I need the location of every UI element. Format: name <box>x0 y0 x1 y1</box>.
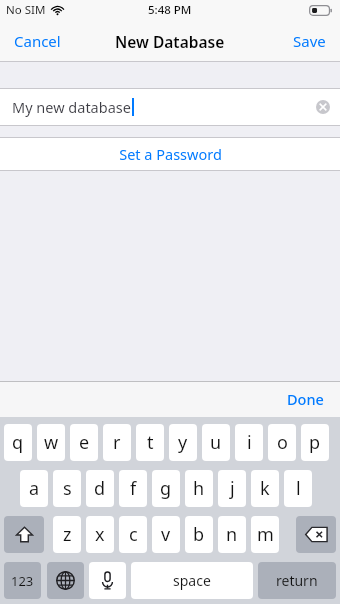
button[interactable]: m <box>251 516 279 553</box>
button[interactable]: i <box>235 424 263 461</box>
button[interactable]: p <box>301 424 329 461</box>
button[interactable]: My new database <box>0 88 340 126</box>
button[interactable]: k <box>251 470 279 507</box>
button[interactable]: z <box>53 516 81 553</box>
staticText: c <box>129 522 138 547</box>
staticText: f <box>130 476 137 501</box>
button[interactable]: e <box>70 424 98 461</box>
button[interactable]: space <box>131 562 253 599</box>
button[interactable]: f <box>119 470 147 507</box>
staticText: x <box>95 522 105 547</box>
button[interactable]: c <box>119 516 147 553</box>
staticText: y <box>178 430 188 455</box>
staticText: a <box>29 476 40 501</box>
button[interactable]: Clear text <box>316 100 330 114</box>
button[interactable]: Dictate <box>89 562 126 599</box>
staticText: k <box>260 476 270 501</box>
staticText: e <box>79 430 90 455</box>
button[interactable]: t <box>136 424 164 461</box>
button[interactable]: 123 <box>4 562 41 599</box>
staticText: m <box>257 522 274 547</box>
staticText: i <box>247 430 252 455</box>
button[interactable]: x <box>86 516 114 553</box>
staticText: h <box>193 476 205 501</box>
staticText: o <box>277 430 288 455</box>
staticText: t <box>147 430 154 455</box>
staticText: s <box>63 476 72 501</box>
button[interactable]: h <box>185 470 213 507</box>
staticText: n <box>226 522 238 547</box>
button[interactable]: o <box>268 424 296 461</box>
staticText: r <box>113 430 121 455</box>
button[interactable]: n <box>218 516 246 553</box>
staticText: No SIM <box>6 2 46 18</box>
button[interactable]: Backspace <box>296 516 336 553</box>
button[interactable]: Save <box>279 23 340 59</box>
staticText: v <box>161 522 171 547</box>
button[interactable]: return <box>258 562 336 599</box>
button[interactable]: q <box>4 424 32 461</box>
staticText: 5:48 PM <box>148 2 192 18</box>
button[interactable]: Set a Password <box>0 137 340 171</box>
staticText: return <box>276 571 318 590</box>
button[interactable]: l <box>284 470 312 507</box>
staticText: Done <box>287 389 324 409</box>
button[interactable]: a <box>20 470 48 507</box>
button[interactable]: Shift <box>4 516 44 553</box>
staticText: u <box>210 430 222 455</box>
button[interactable]: Change keyboard language <box>47 562 84 599</box>
button[interactable]: v <box>152 516 180 553</box>
staticText: Save <box>293 31 326 51</box>
button[interactable]: g <box>152 470 180 507</box>
button[interactable]: Done <box>271 383 340 415</box>
staticText: g <box>160 476 172 501</box>
button[interactable]: b <box>185 516 213 553</box>
staticText: b <box>193 522 205 547</box>
button[interactable]: u <box>202 424 230 461</box>
button[interactable]: y <box>169 424 197 461</box>
button[interactable]: s <box>53 470 81 507</box>
button[interactable]: j <box>218 470 246 507</box>
staticText: z <box>63 522 72 547</box>
button[interactable]: w <box>37 424 65 461</box>
staticText: p <box>309 430 321 455</box>
staticText: w <box>44 430 59 455</box>
staticText: 123 <box>11 572 34 590</box>
staticText: New Database <box>115 31 225 52</box>
staticText: My new database <box>12 97 131 117</box>
staticText: space <box>173 571 211 590</box>
staticText: l <box>296 476 301 501</box>
staticText: j <box>230 476 235 501</box>
staticText: d <box>94 476 106 501</box>
button[interactable]: d <box>86 470 114 507</box>
button[interactable]: r <box>103 424 131 461</box>
staticText: q <box>12 430 24 455</box>
button[interactable]: Cancel <box>0 23 75 59</box>
staticText: Cancel <box>14 31 61 51</box>
staticText: Set a Password <box>119 144 222 164</box>
